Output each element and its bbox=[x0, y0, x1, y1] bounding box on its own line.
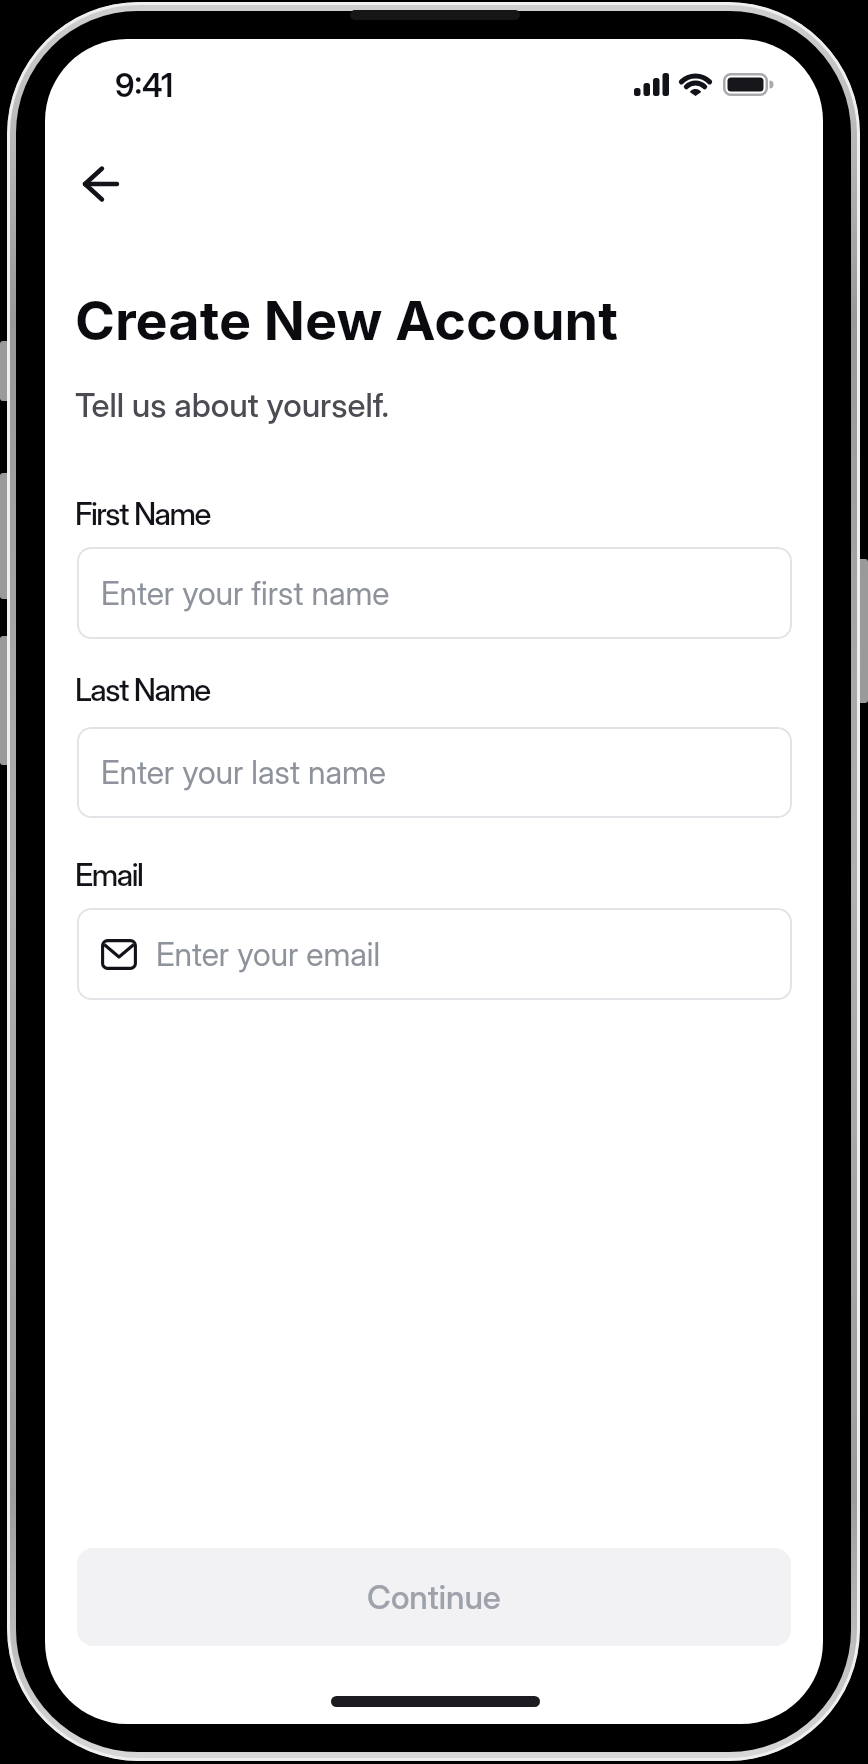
staticText: Last Name bbox=[75, 671, 210, 709]
staticText: 9:41 bbox=[115, 66, 174, 105]
button[interactable]: Continue bbox=[77, 1548, 791, 1646]
staticText: Enter your first name bbox=[101, 574, 390, 613]
staticText: Tell us about yourself. bbox=[75, 385, 390, 425]
staticText: Continue bbox=[367, 1577, 501, 1617]
staticText: First Name bbox=[75, 495, 210, 533]
staticText: Email bbox=[75, 856, 143, 894]
staticText: Enter your last name bbox=[101, 753, 386, 792]
button[interactable]: Enter your first name bbox=[77, 547, 792, 639]
button[interactable]: Enter your email bbox=[77, 908, 792, 1000]
staticText: Create New Account bbox=[75, 288, 618, 353]
staticText: Enter your email bbox=[156, 935, 381, 974]
button[interactable] bbox=[70, 154, 132, 214]
button[interactable]: Enter your last name bbox=[77, 727, 792, 818]
